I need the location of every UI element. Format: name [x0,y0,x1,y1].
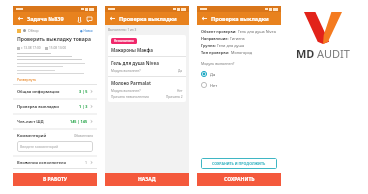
button[interactable]: Проверка выкладки [13,100,97,113]
button[interactable]: Back [109,15,116,22]
button[interactable]: Введите комментарий [17,141,93,152]
staticText: Выполнено: 1 из 3 [108,28,137,32]
staticText: Проверка выкладки [211,15,277,22]
staticText: Макароны Макфа [111,47,153,53]
staticText: Модуль выполнен? [111,89,141,93]
staticText: 1 | 3 [79,104,88,109]
staticText: Объект проверки: [201,29,238,34]
staticText: СОХРАНИТЬ И ПРОДОЛЖИТЬ [212,161,266,166]
staticText: Проверка выкладки [119,15,185,22]
staticText: AUDIT [317,46,350,61]
staticText: Гели для душа [217,43,244,48]
staticText: Проверить выкладку товара [17,36,91,43]
staticText: Причина 2 [166,95,183,99]
button[interactable]: Развернуть [17,77,37,82]
button[interactable]: Вложения исполнителя [13,157,97,168]
button[interactable]: НАЗАД [105,173,189,186]
staticText: Введите комментарий [20,144,59,149]
button[interactable]: Back [201,15,208,22]
button[interactable]: Молоко Parmalat [108,77,186,102]
staticText: Молоко Parmalat [111,80,151,86]
button[interactable]: Гель для душа Nivea [108,57,186,76]
staticText: Тип проверки: [201,50,231,55]
staticText: Проверка выкладки [17,104,59,109]
button[interactable]: СОХРАНИТЬ [197,173,281,186]
staticText: Модуль выполнен? [111,69,141,73]
staticText: Нет [210,83,217,88]
staticText: Гель для душа Nivea [238,29,276,34]
button[interactable]: СОХРАНИТЬ И ПРОДОЛЖИТЬ [201,158,277,169]
staticText: Да [210,72,216,77]
staticText: Да [178,69,183,73]
staticText: 145 | 145 [70,119,88,124]
staticText: Общая информация [17,89,60,94]
staticText: Чек-лист ШД [17,119,44,124]
staticText: Гигиена [230,36,245,41]
staticText: Не выполнено [114,39,134,43]
button[interactable]: Не выполнено [108,35,156,56]
staticText: Направление: [201,36,230,41]
staticText: Комментарий [17,133,47,138]
staticText: Моногород [231,50,252,55]
button[interactable]: Нет [201,82,277,88]
staticText: В РАБОТУ [43,176,68,183]
button[interactable]: Чек-лист ШД [13,115,97,128]
staticText: Вложения исполнителя [17,160,66,165]
staticText: 3 | 5 [79,89,88,94]
button[interactable]: Общая информация [13,85,97,98]
staticText: Причина невыполнения [111,95,149,99]
staticText: Нет [177,89,183,93]
staticText: Обязательно [74,134,93,138]
staticText: с 13.08 17:00 [21,46,41,50]
staticText: MD [296,46,315,61]
button[interactable]: В РАБОТУ [13,173,97,186]
staticText: Модуль выполнен? [201,61,235,66]
staticText: Группа: [201,43,217,48]
staticText: 15.08 13:00 [49,46,67,50]
staticText: НАЗАД [138,176,156,183]
button[interactable]: Comments [85,15,93,23]
staticText: Гель для душа Nivea [111,60,159,66]
staticText: 1 [85,160,88,165]
staticText: Задача №839 [27,15,75,22]
staticText: ● Новая [80,29,93,33]
staticText: СОХРАНИТЬ [224,176,255,183]
button[interactable]: Attachments [75,15,83,23]
button[interactable]: Back [17,15,24,22]
button[interactable]: Да [201,71,277,77]
staticText: Обзор [28,28,39,33]
